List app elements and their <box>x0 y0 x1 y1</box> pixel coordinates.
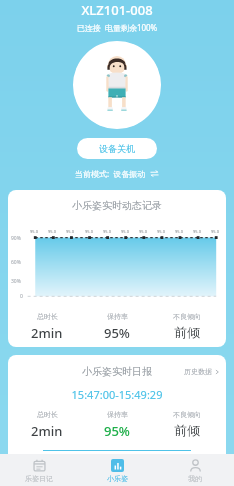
staticText: XLZ101-008 <box>0 1 234 19</box>
button[interactable]: 我的 <box>156 454 234 486</box>
staticText: 60% <box>11 259 21 266</box>
staticText: 小乐姿实时动态记录 <box>8 199 226 212</box>
staticText: 95% <box>104 324 130 342</box>
staticText: 2min <box>31 324 63 342</box>
staticText: 95.0 <box>66 229 74 234</box>
staticText: 小乐姿 <box>107 474 128 483</box>
staticText: 保持率 <box>107 410 128 419</box>
staticText: 小乐姿实时日报 <box>8 365 226 378</box>
staticText: 总时长 <box>37 312 58 321</box>
other: Switch mode <box>150 169 159 178</box>
staticText: 前倾 <box>174 324 200 340</box>
staticText: 95.0 <box>48 229 56 234</box>
button[interactable]: 小乐姿 <box>78 454 156 486</box>
staticText: 95% <box>104 422 130 440</box>
staticText: 乐姿日记 <box>25 474 53 483</box>
staticText: 95.0 <box>103 229 111 234</box>
staticText: 已连接 电量剩余100% <box>0 22 234 33</box>
staticText: 95.0 <box>175 229 183 234</box>
button[interactable]: 历史数据 <box>184 367 220 376</box>
staticText: 保持率 <box>107 312 128 321</box>
staticText: 不良倾向 <box>173 410 201 419</box>
staticText: 95.0 <box>211 229 219 234</box>
staticText: 95.0 <box>139 229 147 234</box>
staticText: 当前模式: 设备振动 <box>75 168 146 179</box>
staticText: 95.0 <box>193 229 201 234</box>
staticText: 30% <box>11 278 21 285</box>
staticText: 不良倾向 <box>173 312 201 321</box>
staticText: 95.0 <box>121 229 129 234</box>
staticText: 0 <box>20 293 23 300</box>
button[interactable]: 乐姿日记 <box>0 454 78 486</box>
staticText: 历史数据 <box>184 367 212 376</box>
staticText: 95.0 <box>157 229 165 234</box>
button[interactable]: 设备关机 <box>77 138 157 159</box>
button[interactable]: 当前模式: 设备振动 <box>0 168 234 179</box>
staticText: 我的 <box>188 474 202 483</box>
staticText: 前倾 <box>174 422 200 438</box>
staticText: 2min <box>31 422 63 440</box>
staticText: 15:47:00-15:49:29 <box>8 387 226 402</box>
staticText: 总时长 <box>37 410 58 419</box>
staticText: 90% <box>11 235 21 242</box>
staticText: 95.0 <box>30 229 38 234</box>
staticText: 95.0 <box>85 229 93 234</box>
staticText: 设备关机 <box>99 143 135 154</box>
